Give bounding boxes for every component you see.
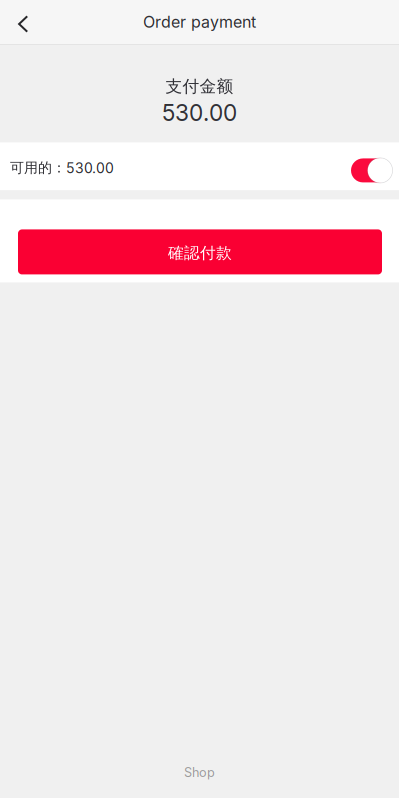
staticText: 支付金额: [165, 76, 233, 97]
staticText: 530.00: [162, 99, 237, 126]
button[interactable]: 確認付款: [18, 229, 382, 274]
staticText: 可用的：530.00: [10, 159, 114, 177]
button[interactable]: Back: [0, 0, 40, 45]
button[interactable]: Shop: [170, 759, 229, 798]
staticText: 確認付款: [168, 243, 232, 263]
staticText: Shop: [184, 765, 215, 780]
button[interactable]: Use available balance: [351, 149, 393, 183]
staticText: Order payment: [143, 12, 256, 32]
